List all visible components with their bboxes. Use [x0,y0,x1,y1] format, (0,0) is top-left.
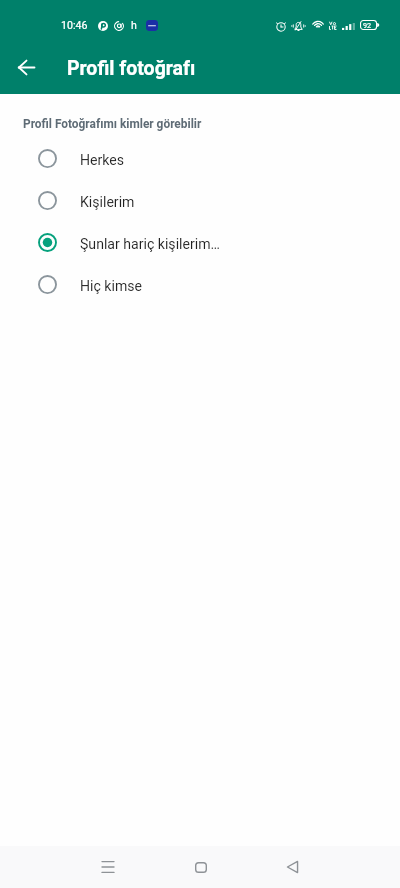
button[interactable]: Kişilerim [0,179,400,221]
staticText: Şunlar hariç kişilerim… [80,236,220,253]
staticText: Herkes [80,152,125,169]
button[interactable]: Home [180,846,222,888]
button[interactable]: Şunlar hariç kişilerim… [0,221,400,263]
button[interactable]: Recent apps [87,846,129,888]
button[interactable]: Back [4,45,48,89]
staticText: 10:46 [61,19,88,31]
staticText: Kişilerim [80,194,135,211]
staticText: 92 [363,21,372,29]
staticText: Hiç kimse [80,278,143,295]
staticText: Profil fotoğrafı [67,57,196,80]
button[interactable]: Back [271,846,313,888]
staticText: Profil Fotoğrafımı kimler görebilir [23,117,202,131]
button[interactable]: Herkes [0,137,400,179]
button[interactable]: Hiç kimse [0,263,400,305]
staticText: h [131,19,137,31]
